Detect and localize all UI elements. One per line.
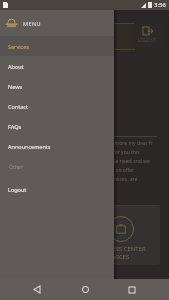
button[interactable]: Recent apps — [121, 279, 143, 300]
button[interactable]: LOGOUT — [133, 23, 161, 49]
button[interactable] — [8, 205, 160, 265]
staticText: Good day and welcome back to the app onc… — [8, 140, 157, 183]
staticText: SERVICES — [103, 253, 130, 261]
button[interactable]: News — [0, 76, 114, 96]
button[interactable]: Contact — [0, 96, 114, 116]
button[interactable]: Announcements — [0, 136, 114, 156]
button[interactable]: Services — [0, 36, 114, 56]
staticText: Hi Marcello! — [8, 124, 53, 135]
staticText: About — [8, 63, 24, 70]
button[interactable]: Logout — [0, 179, 114, 199]
staticText: MENU — [23, 20, 42, 27]
staticText: Other — [9, 164, 23, 171]
staticText: FAQs — [8, 123, 22, 130]
button[interactable]: Home — [74, 279, 96, 300]
staticText: Contact — [8, 103, 28, 110]
button[interactable]: FAQs — [0, 116, 114, 136]
staticText: 3:56 — [154, 1, 166, 9]
staticText: BUSINESS CENTER — [94, 245, 146, 253]
staticText: LOGOUT — [138, 37, 157, 43]
button[interactable]: About — [0, 56, 114, 76]
staticText: Announcements — [8, 143, 51, 150]
staticText: Services — [8, 43, 29, 50]
staticText: Logout — [8, 186, 27, 193]
button[interactable] — [8, 23, 136, 50]
button[interactable]: Back — [26, 279, 48, 300]
staticText: News — [8, 83, 23, 90]
